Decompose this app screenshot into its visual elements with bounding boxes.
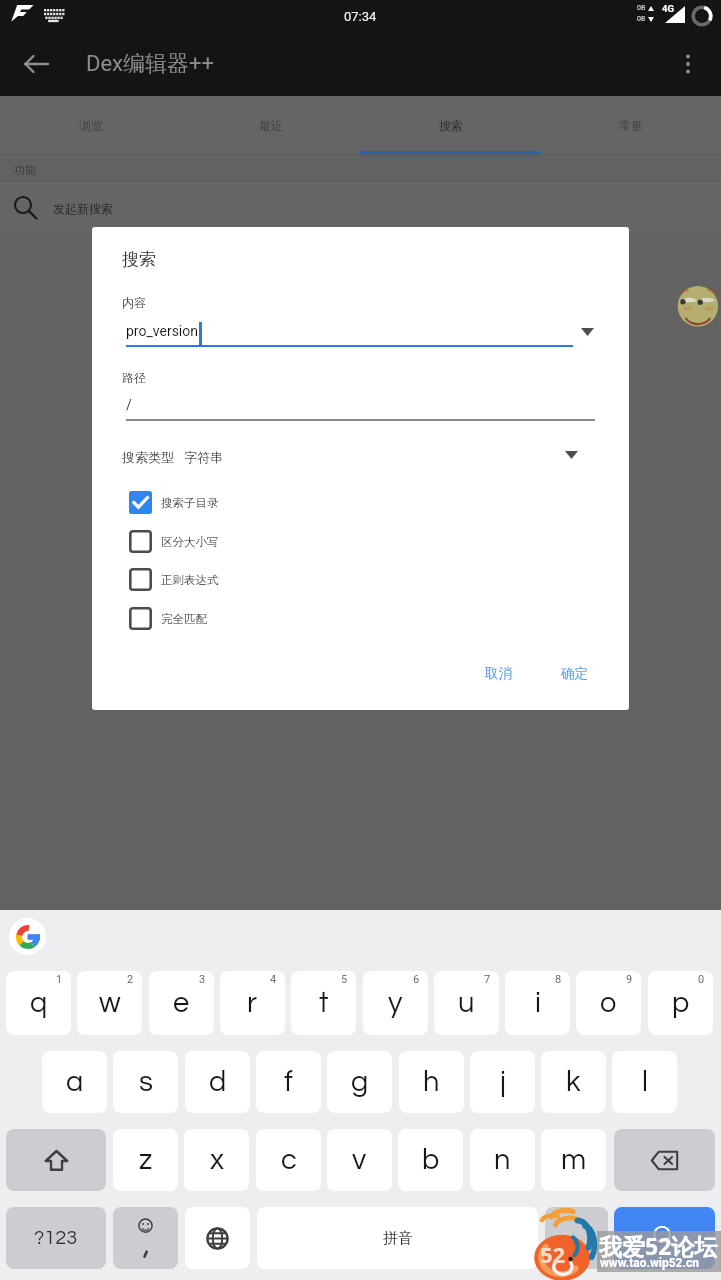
staticText: 路径 xyxy=(122,370,146,385)
staticText: q xyxy=(30,988,48,1018)
button[interactable]: 搜索子目录 xyxy=(129,486,359,519)
button[interactable]: 拼音 xyxy=(257,1207,538,1269)
staticText: a xyxy=(66,1067,84,1097)
staticText: 常量 xyxy=(619,118,643,133)
button[interactable]: k xyxy=(541,1051,606,1113)
staticText: u xyxy=(458,988,475,1018)
staticText: 07:34 xyxy=(344,9,377,24)
button[interactable]: 确定 xyxy=(541,656,607,690)
button[interactable]: More options xyxy=(667,43,709,85)
button[interactable]: y xyxy=(363,971,428,1035)
staticText: www.tao.wip52.cn xyxy=(600,1256,699,1270)
staticText: 1 xyxy=(56,973,63,986)
button[interactable]: t xyxy=(291,971,356,1035)
button[interactable]: d xyxy=(185,1051,250,1113)
staticText: d xyxy=(209,1067,227,1097)
button[interactable]: p xyxy=(648,971,713,1035)
staticText: w xyxy=(99,988,121,1018)
staticText: 区分大小写 xyxy=(161,535,219,549)
staticText: t xyxy=(319,988,329,1018)
button[interactable]: q xyxy=(6,971,71,1035)
button[interactable]: Backspace xyxy=(614,1129,715,1191)
button[interactable]: x xyxy=(184,1129,249,1191)
button[interactable]: r xyxy=(220,971,285,1035)
staticText: 4 xyxy=(270,973,277,986)
button[interactable]: Search xyxy=(614,1207,715,1269)
button[interactable]: h xyxy=(399,1051,464,1113)
staticText: x xyxy=(210,1145,224,1175)
button[interactable]: a xyxy=(42,1051,107,1113)
button[interactable]: 取消 xyxy=(465,656,531,690)
staticText: g xyxy=(351,1067,369,1097)
button[interactable]: Period xyxy=(545,1207,608,1269)
staticText: 5 xyxy=(341,973,348,986)
staticText: e xyxy=(173,988,190,1018)
button[interactable]: o xyxy=(576,971,641,1035)
button[interactable]: Shift xyxy=(6,1129,106,1191)
staticText: 最近 xyxy=(259,118,283,133)
button[interactable]: b xyxy=(398,1129,463,1191)
staticText: 完全匹配 xyxy=(161,612,207,626)
button[interactable]: s xyxy=(113,1051,178,1113)
button[interactable]: 正则表达式 xyxy=(129,563,359,596)
button[interactable]: 发起新搜索 xyxy=(0,184,721,232)
staticText: 2 xyxy=(127,973,134,986)
button[interactable]: m xyxy=(541,1129,606,1191)
button[interactable]: 区分大小写 xyxy=(129,525,359,558)
staticText: z xyxy=(139,1145,153,1175)
button[interactable]: g xyxy=(327,1051,392,1113)
button[interactable]: Assistant xyxy=(675,282,719,326)
button[interactable]: 完全匹配 xyxy=(129,602,359,635)
staticText: 9 xyxy=(626,973,633,986)
button[interactable]: l xyxy=(612,1051,677,1113)
button[interactable]: i xyxy=(505,971,570,1035)
staticText: k xyxy=(566,1067,581,1097)
button[interactable]: u xyxy=(434,971,499,1035)
button[interactable]: Google xyxy=(9,918,46,955)
button[interactable]: Choose search type xyxy=(557,441,585,469)
staticText: 8 xyxy=(555,973,562,986)
staticText: y xyxy=(388,988,403,1018)
button[interactable]: v xyxy=(327,1129,392,1191)
staticText: 3 xyxy=(199,973,206,986)
staticText: n xyxy=(494,1145,511,1175)
staticText: 7 xyxy=(484,973,491,986)
staticText: pro_version xyxy=(126,323,198,339)
staticText: v xyxy=(352,1145,367,1175)
button[interactable]: n xyxy=(470,1129,535,1191)
button[interactable]: 搜索 xyxy=(361,96,541,154)
staticText: f xyxy=(284,1067,293,1097)
staticText: 取消 xyxy=(485,665,512,682)
button[interactable]: Show suggestions xyxy=(573,318,601,346)
staticText: 拼音 xyxy=(383,1229,413,1248)
staticText: m xyxy=(561,1145,587,1175)
staticText: b xyxy=(422,1145,440,1175)
staticText: c xyxy=(281,1145,297,1175)
button[interactable]: z xyxy=(113,1129,178,1191)
button[interactable]: e xyxy=(149,971,214,1035)
staticText: l xyxy=(642,1067,648,1097)
button[interactable]: w xyxy=(77,971,142,1035)
staticText: 我爱52论坛 xyxy=(599,1230,718,1261)
button[interactable]: f xyxy=(256,1051,321,1113)
button[interactable]: ?123 xyxy=(6,1207,106,1269)
button[interactable]: c xyxy=(256,1129,321,1191)
button[interactable]: j xyxy=(470,1051,535,1113)
staticText: 0 xyxy=(698,973,705,986)
button[interactable]: Emoji and comma xyxy=(113,1207,178,1269)
staticText: 内容 xyxy=(122,295,146,310)
staticText: 搜索 xyxy=(122,249,156,270)
staticText: 6 xyxy=(413,973,420,986)
staticText: i xyxy=(535,988,541,1018)
staticText: j xyxy=(500,1067,506,1097)
button[interactable]: Change language xyxy=(185,1207,250,1269)
staticText: s xyxy=(139,1067,153,1097)
staticText: 功能 xyxy=(14,163,36,177)
staticText: ?123 xyxy=(34,1228,78,1249)
staticText: 正则表达式 xyxy=(161,573,219,587)
staticText: 搜索 xyxy=(439,118,463,133)
button[interactable]: Back xyxy=(14,42,58,86)
